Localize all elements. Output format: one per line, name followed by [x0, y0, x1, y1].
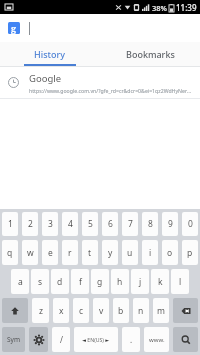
button[interactable]: 7: [122, 212, 138, 236]
staticText: e: [48, 247, 53, 259]
button[interactable]: Search: [173, 327, 198, 352]
button[interactable]: c: [73, 298, 89, 323]
button[interactable]: u: [122, 240, 138, 265]
button[interactable]: .: [122, 327, 140, 352]
staticText: https://www.google.com.vn/?gfe_rd=cr&dcr…: [29, 87, 192, 94]
staticText: 3: [48, 218, 53, 230]
button[interactable]: o: [162, 240, 178, 265]
button[interactable]: s: [31, 269, 49, 294]
button[interactable]: t: [82, 240, 98, 265]
button[interactable]: a: [11, 269, 29, 294]
button[interactable]: History: [0, 42, 100, 66]
staticText: g: [97, 276, 103, 288]
staticText: /: [60, 334, 63, 345]
staticText: j: [139, 276, 142, 288]
button[interactable]: y: [102, 240, 118, 265]
staticText: Google: [29, 72, 62, 85]
staticText: f: [79, 276, 82, 288]
button[interactable]: r: [62, 240, 78, 265]
button[interactable]: m: [153, 298, 169, 323]
staticText: a: [18, 276, 23, 288]
staticText: k: [158, 276, 163, 288]
staticText: u: [127, 247, 133, 259]
button[interactable]: 5: [82, 212, 98, 236]
button[interactable]: 6: [102, 212, 118, 236]
staticText: .: [130, 334, 133, 345]
staticText: s: [38, 276, 43, 288]
staticText: q: [7, 247, 13, 259]
staticText: 9: [168, 218, 173, 230]
staticText: ◄ EN(US) ►: [82, 336, 110, 343]
button[interactable]: ◄ EN(US) ►: [74, 327, 118, 352]
staticText: b: [118, 305, 124, 317]
staticText: t: [88, 247, 92, 259]
button[interactable]: Google: [0, 67, 200, 98]
staticText: h: [117, 276, 123, 288]
button[interactable]: 4: [62, 212, 78, 236]
staticText: Bookmarks: [126, 48, 175, 60]
staticText: o: [167, 247, 173, 259]
staticText: p: [187, 247, 193, 259]
staticText: d: [57, 276, 63, 288]
staticText: Sym: [7, 335, 20, 344]
staticText: 0: [188, 218, 193, 230]
button[interactable]: Settings: [29, 327, 48, 352]
button[interactable]: 2: [22, 212, 38, 236]
staticText: History: [34, 48, 66, 60]
button[interactable]: f: [71, 269, 89, 294]
button[interactable]: Bookmarks: [100, 42, 200, 66]
button[interactable]: j: [131, 269, 149, 294]
button[interactable]: g: [91, 269, 109, 294]
button[interactable]: g: [0, 14, 200, 42]
staticText: n: [138, 305, 144, 317]
button[interactable]: h: [111, 269, 129, 294]
staticText: 7: [128, 218, 133, 230]
button[interactable]: q: [2, 240, 18, 265]
button[interactable]: e: [42, 240, 58, 265]
button[interactable]: x: [53, 298, 69, 323]
staticText: g: [11, 22, 17, 34]
staticText: i: [149, 247, 152, 259]
staticText: z: [39, 305, 43, 317]
button[interactable]: p: [182, 240, 198, 265]
button[interactable]: 0: [182, 212, 198, 236]
staticText: w: [27, 247, 34, 259]
button[interactable]: l: [171, 269, 189, 294]
button[interactable]: 9: [162, 212, 178, 236]
staticText: 11:39: [176, 2, 197, 13]
staticText: 5: [88, 218, 93, 230]
button[interactable]: n: [133, 298, 149, 323]
staticText: 8: [148, 218, 153, 230]
button[interactable]: www.: [144, 327, 169, 352]
button[interactable]: w: [22, 240, 38, 265]
staticText: 6: [108, 218, 113, 230]
button[interactable]: 3: [42, 212, 58, 236]
staticText: y: [108, 247, 113, 259]
button[interactable]: i: [142, 240, 158, 265]
button[interactable]: Sym: [2, 327, 25, 352]
staticText: 4: [68, 218, 73, 230]
staticText: l: [179, 276, 182, 288]
button[interactable]: k: [151, 269, 169, 294]
staticText: 2: [28, 218, 33, 230]
staticText: r: [68, 247, 72, 259]
staticText: m: [157, 305, 165, 317]
staticText: www.: [149, 336, 165, 344]
button[interactable]: z: [32, 298, 49, 323]
button[interactable]: d: [51, 269, 69, 294]
staticText: v: [99, 305, 104, 317]
staticText: 1: [8, 218, 13, 230]
button[interactable]: 8: [142, 212, 158, 236]
button[interactable]: Backspace: [173, 298, 198, 323]
button[interactable]: 1: [2, 212, 18, 236]
button[interactable]: v: [93, 298, 109, 323]
staticText: x: [59, 305, 64, 317]
button[interactable]: b: [113, 298, 129, 323]
button[interactable]: /: [52, 327, 70, 352]
staticText: 38%: [152, 3, 167, 13]
button[interactable]: Shift: [2, 298, 28, 323]
staticText: c: [79, 305, 84, 317]
